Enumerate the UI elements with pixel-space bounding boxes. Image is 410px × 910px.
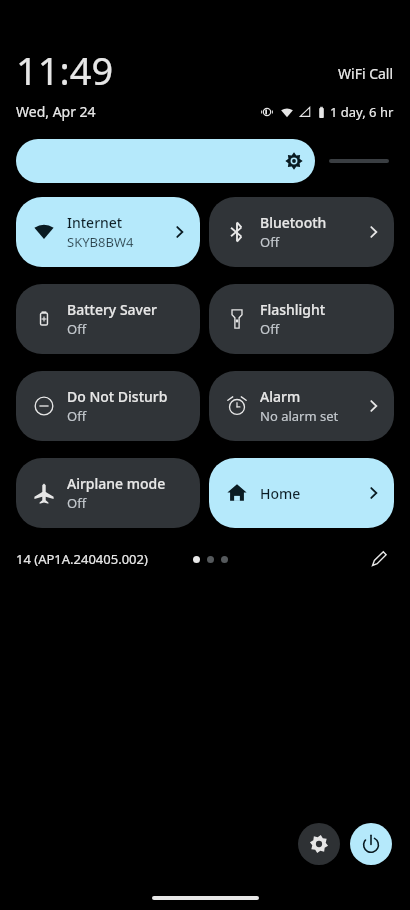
staticText: No alarm set — [260, 407, 339, 425]
button[interactable]: Alarm — [209, 371, 394, 441]
staticText: Home — [260, 484, 301, 503]
staticText: Bluetooth — [260, 213, 327, 232]
button[interactable]: Bluetooth — [209, 197, 394, 267]
staticText: 14 (AP1A.240405.002) — [16, 550, 148, 568]
staticText: WiFi Call — [338, 64, 394, 83]
button[interactable]: Home — [209, 458, 394, 528]
staticText: Do Not Disturb — [67, 387, 168, 406]
button[interactable]: Brightness — [16, 139, 394, 183]
staticText: Off — [260, 320, 280, 338]
button[interactable]: Settings — [298, 823, 340, 865]
staticText: Off — [67, 407, 87, 425]
button[interactable]: Battery Saver — [16, 284, 200, 354]
staticText: Airplane mode — [67, 474, 166, 493]
staticText: Battery Saver — [67, 300, 157, 319]
staticText: Off — [67, 320, 87, 338]
button[interactable]: Internet — [16, 197, 200, 267]
staticText: SKYB8BW4 — [67, 233, 134, 251]
button[interactable]: Power — [350, 823, 392, 865]
staticText: Off — [260, 233, 280, 251]
staticText: Internet — [67, 213, 123, 232]
button[interactable]: Flashlight — [209, 284, 394, 354]
staticText: Alarm — [260, 387, 301, 406]
button[interactable]: Airplane mode — [16, 458, 200, 528]
staticText: 1 day, 6 hr — [330, 103, 394, 121]
button[interactable]: Do Not Disturb — [16, 371, 200, 441]
staticText: Wed, Apr 24 — [16, 102, 96, 121]
button[interactable]: Edit tiles — [364, 544, 394, 574]
staticText: Off — [67, 494, 87, 512]
staticText: 11:49 — [16, 44, 114, 96]
staticText: Flashlight — [260, 300, 326, 319]
